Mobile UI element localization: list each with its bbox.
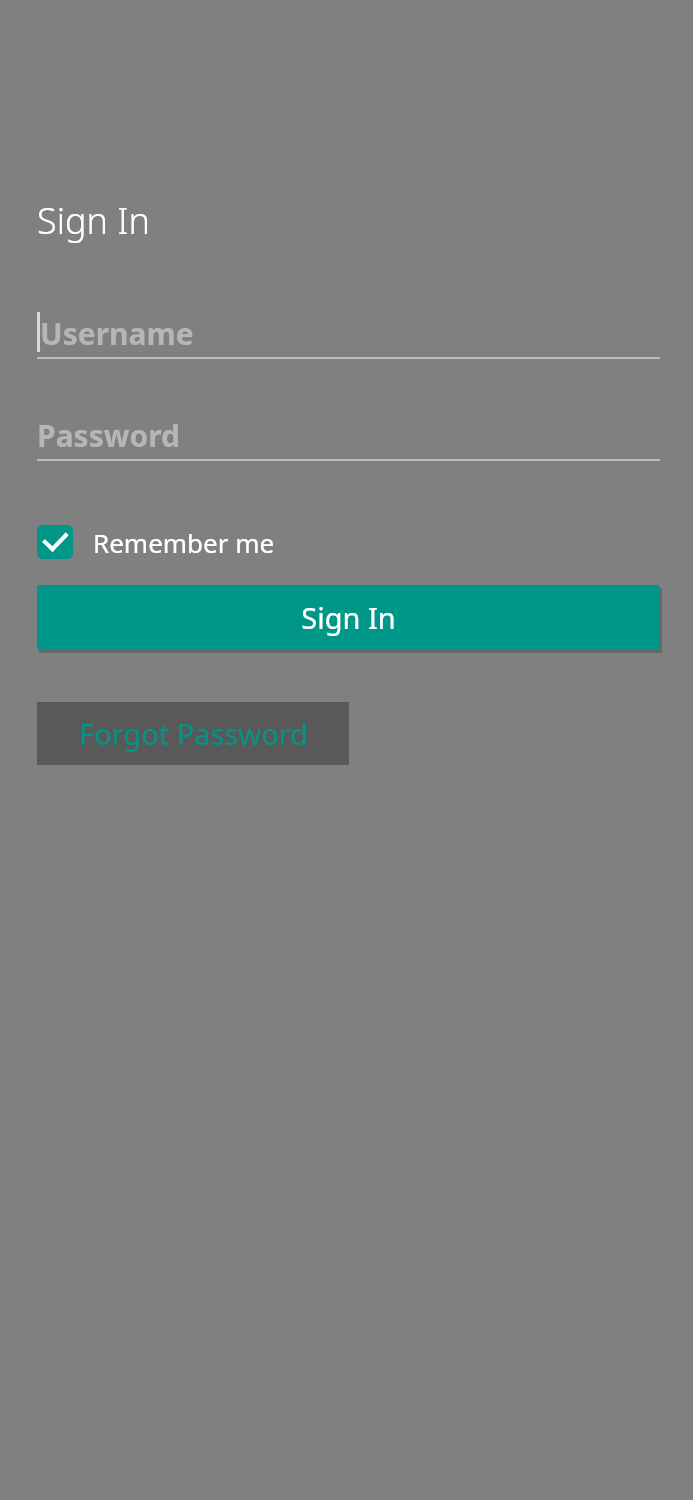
staticText: Password [37,415,180,456]
staticText: Sign In [301,598,396,637]
button[interactable]: Remember me [37,523,275,561]
staticText: Remember me [93,525,275,560]
staticText: Forgot Password [79,714,308,753]
staticText: Sign In [37,196,150,245]
staticText: Username [40,313,194,354]
button[interactable]: Forgot Password [37,702,349,765]
button[interactable]: Password [37,409,660,461]
button[interactable]: Sign In [37,585,660,650]
button[interactable]: Username [37,307,660,359]
